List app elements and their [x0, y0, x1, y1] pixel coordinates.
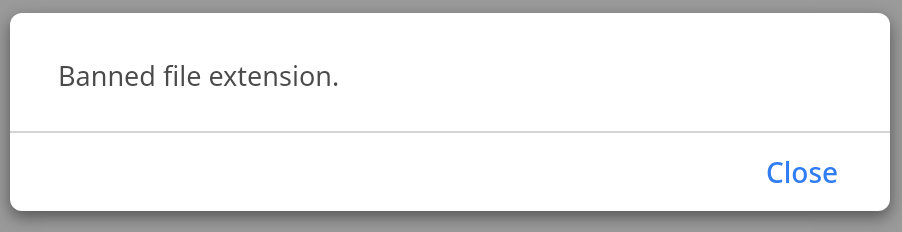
staticText: Close — [766, 153, 839, 191]
staticText: Banned file extension. — [58, 57, 340, 94]
button[interactable]: Close — [750, 143, 855, 201]
